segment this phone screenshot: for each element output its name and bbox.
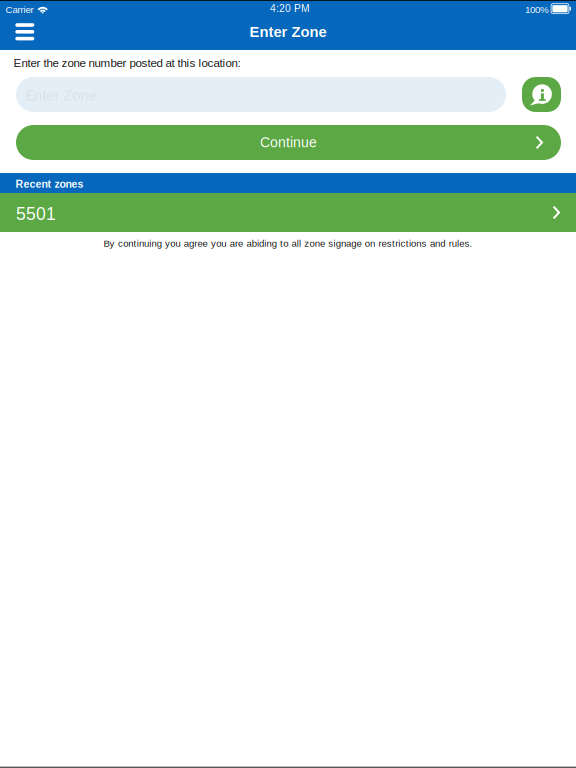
button[interactable]: 5501 (0, 193, 576, 232)
staticText: Enter Zone (249, 23, 326, 40)
staticText: 4:20 PM (270, 3, 310, 14)
staticText: By continuing you agree you are abiding … (103, 238, 473, 249)
staticText: Carrier (5, 4, 33, 15)
staticText: 100% (525, 4, 549, 15)
staticText: Enter the zone number posted at this loc… (13, 56, 240, 69)
staticText: Enter Zone (25, 88, 96, 103)
button[interactable]: Continue (16, 125, 561, 160)
staticText: 5501 (16, 204, 56, 224)
staticText: Recent zones (15, 178, 83, 190)
button[interactable]: Information (522, 77, 561, 112)
button[interactable]: Menu (0, 20, 44, 50)
staticText: Continue (260, 135, 317, 150)
